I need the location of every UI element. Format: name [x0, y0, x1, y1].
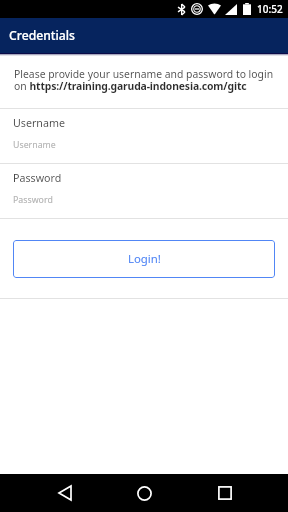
button[interactable]: Back [46, 474, 84, 512]
staticText: Username [13, 139, 56, 151]
button[interactable]: Home [125, 474, 163, 512]
staticText: Credentials [9, 27, 75, 44]
staticText: 10:52 [257, 2, 283, 16]
staticText: Login! [128, 251, 161, 267]
staticText: Password [13, 194, 53, 206]
staticText: Username [13, 116, 65, 131]
staticText: Password [13, 171, 62, 186]
staticText: Please provide your username and passwor… [14, 67, 276, 93]
button[interactable]: Recents [206, 474, 244, 512]
button[interactable]: Password [0, 164, 288, 218]
button[interactable]: Login! [13, 240, 275, 278]
button[interactable]: Username [0, 109, 288, 163]
